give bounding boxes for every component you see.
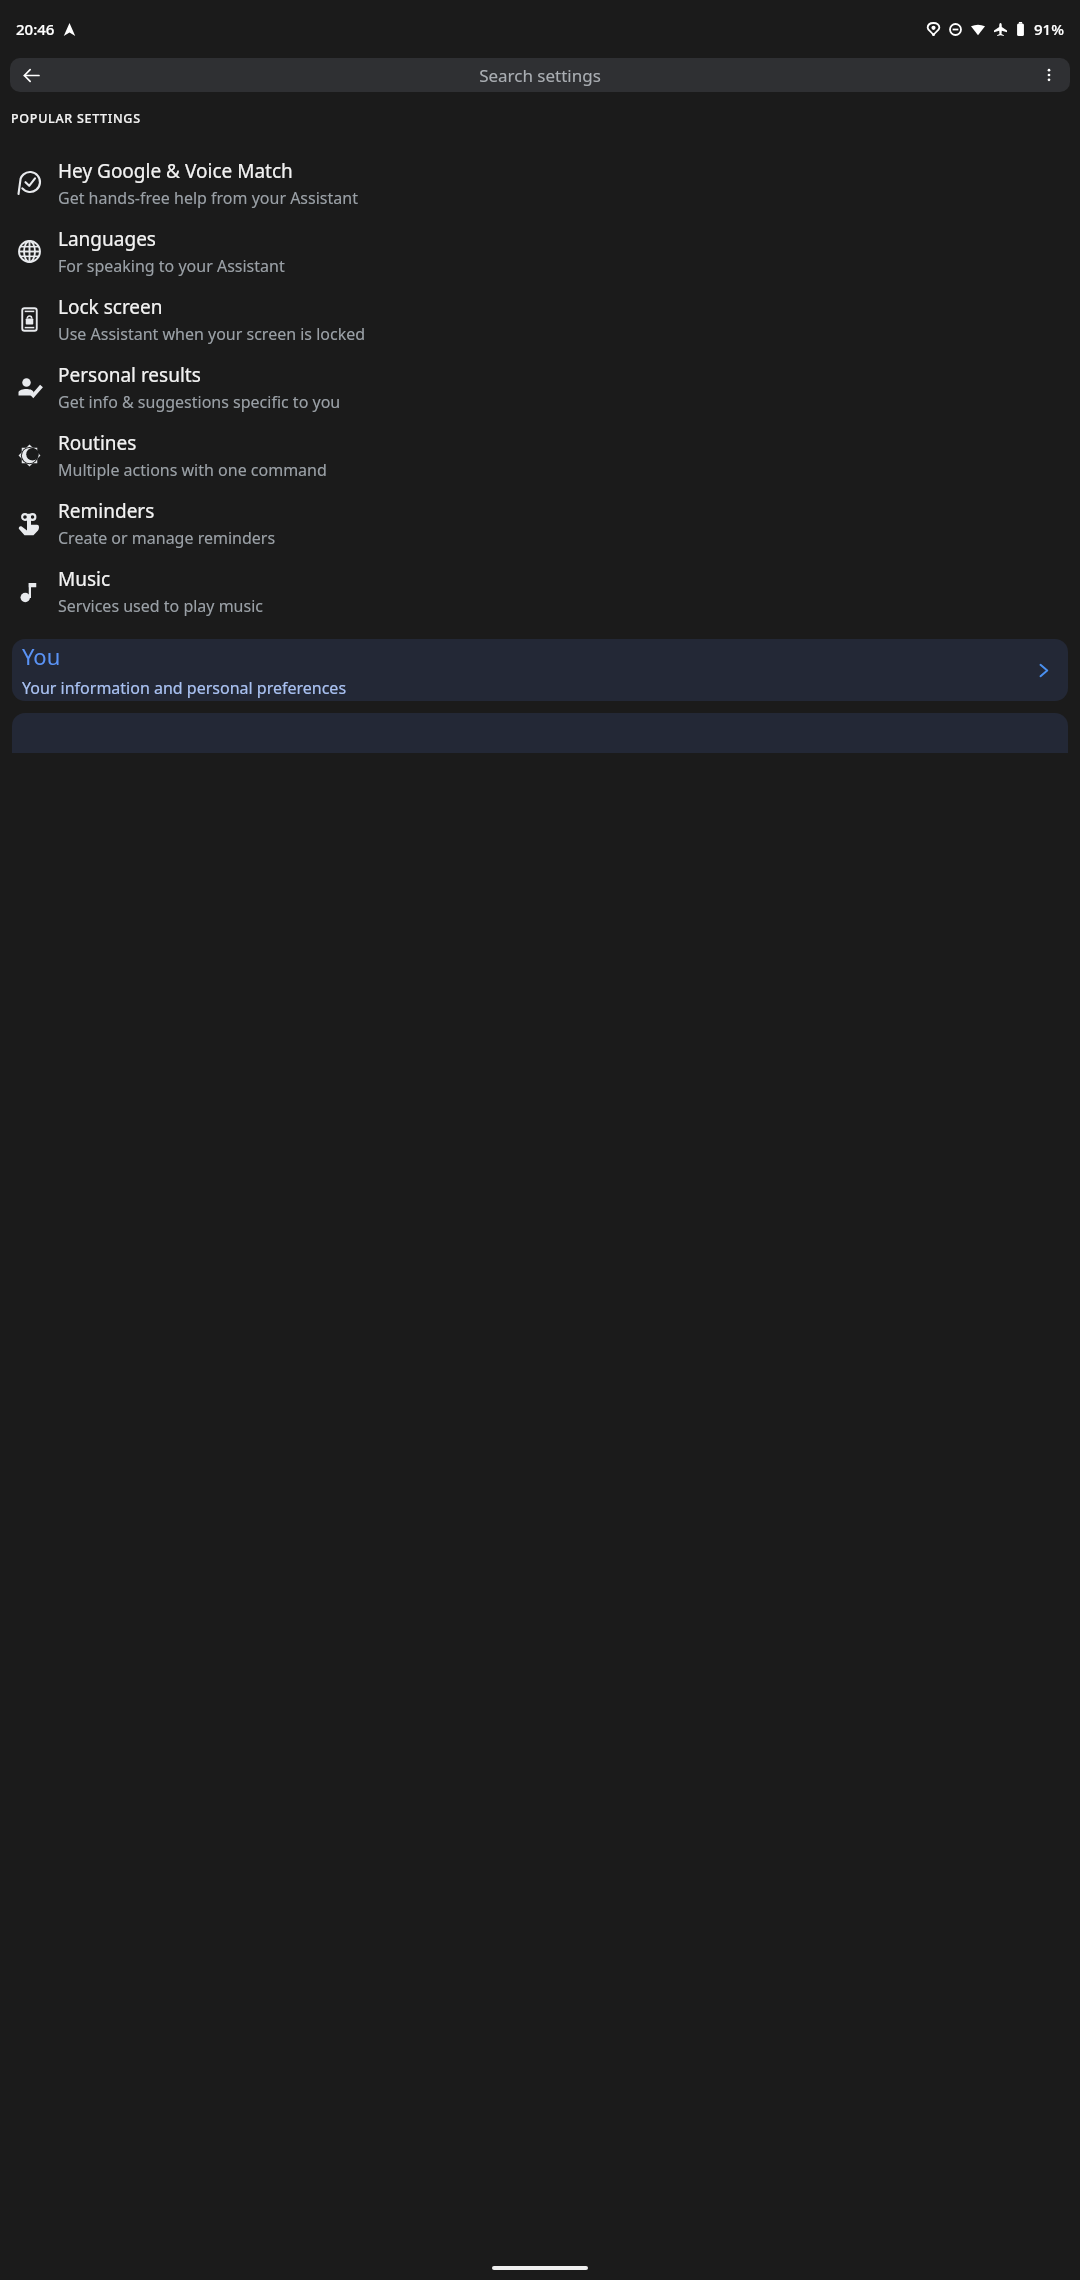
button[interactable]: Lock screen: [0, 285, 1080, 353]
button[interactable]: Open You settings: [1030, 657, 1056, 683]
staticText: Get info & suggestions specific to you: [58, 391, 341, 413]
button[interactable]: Routines: [0, 421, 1080, 489]
staticText: Lock screen: [58, 294, 163, 320]
staticText: Get hands-free help from your Assistant: [58, 187, 358, 209]
button[interactable]: More options: [1032, 58, 1066, 92]
staticText: Search settings: [479, 64, 601, 87]
button[interactable]: Back: [14, 58, 48, 92]
staticText: Your information and personal preference…: [22, 677, 347, 699]
staticText: Services used to play music: [58, 595, 263, 617]
staticText: Create or manage reminders: [58, 527, 276, 549]
button[interactable]: You: [12, 639, 1068, 701]
button[interactable]: Personal results: [0, 353, 1080, 421]
staticText: Reminders: [58, 498, 155, 524]
staticText: You: [22, 641, 61, 671]
staticText: Multiple actions with one command: [58, 459, 327, 481]
button[interactable]: Languages: [0, 217, 1080, 285]
button[interactable]: Hey Google & Voice Match: [0, 149, 1080, 217]
staticText: Use Assistant when your screen is locked: [58, 323, 366, 345]
staticText: Languages: [58, 226, 156, 252]
staticText: POPULAR SETTINGS: [11, 110, 141, 127]
staticText: Hey Google & Voice Match: [58, 158, 293, 184]
staticText: Routines: [58, 430, 137, 456]
staticText: 20:46: [16, 19, 55, 39]
staticText: For speaking to your Assistant: [58, 255, 285, 277]
staticText: 91%: [1034, 19, 1064, 39]
button[interactable]: Music: [0, 557, 1080, 625]
staticText: Personal results: [58, 362, 201, 388]
button[interactable]: Back: [10, 58, 1070, 92]
staticText: Music: [58, 566, 111, 592]
button[interactable]: Reminders: [0, 489, 1080, 557]
